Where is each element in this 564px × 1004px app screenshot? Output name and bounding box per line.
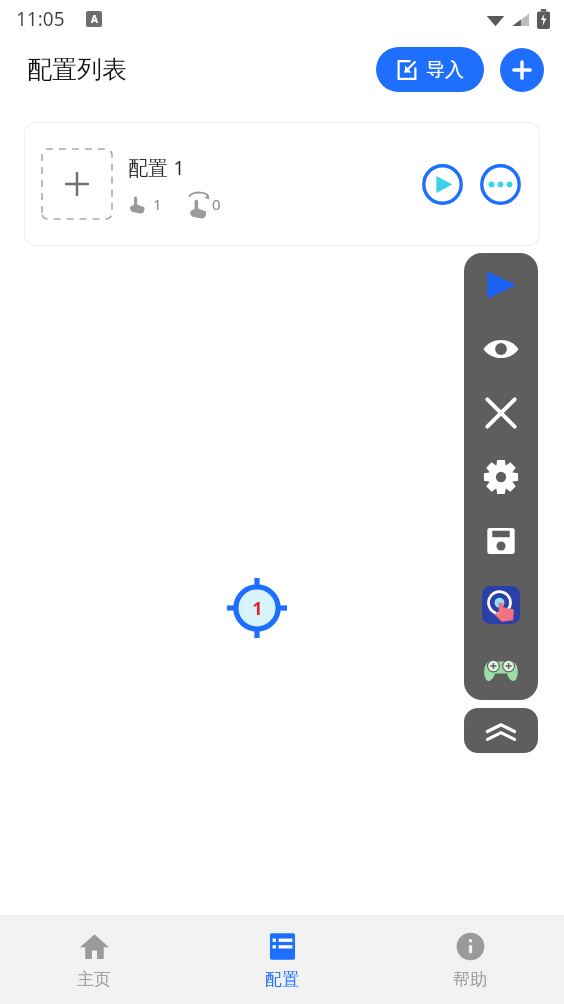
staticText: 配置列表 bbox=[27, 54, 127, 85]
staticText: 主页 bbox=[77, 969, 111, 990]
button[interactable]: Collapse toolbar bbox=[464, 708, 538, 753]
button[interactable]: 导入 bbox=[376, 47, 484, 92]
staticText: 11:05 bbox=[16, 6, 65, 32]
button[interactable]: Add configuration bbox=[500, 48, 544, 92]
staticText: 1 bbox=[252, 596, 263, 621]
button[interactable]: Touch record bbox=[464, 573, 538, 637]
staticText: 1 bbox=[153, 194, 162, 214]
staticText: 配置 bbox=[265, 969, 299, 990]
staticText: 帮助 bbox=[453, 969, 487, 990]
button[interactable]: Run configuration bbox=[420, 162, 464, 206]
button[interactable]: Close bbox=[464, 381, 538, 445]
button[interactable]: 主页 bbox=[0, 915, 188, 1004]
button[interactable]: Gamepad bbox=[464, 637, 538, 700]
button[interactable]: Run bbox=[464, 253, 538, 317]
button[interactable]: 配置 bbox=[188, 915, 376, 1004]
button[interactable]: More options bbox=[478, 162, 522, 206]
button[interactable] bbox=[42, 149, 112, 219]
button[interactable]: 帮助 bbox=[376, 915, 564, 1004]
button[interactable]: 配置 1 bbox=[24, 122, 540, 246]
button[interactable]: Preview bbox=[464, 317, 538, 381]
button[interactable]: Save bbox=[464, 509, 538, 573]
button[interactable]: Settings bbox=[464, 445, 538, 509]
staticText: A bbox=[91, 12, 98, 26]
staticText: 配置 1 bbox=[128, 154, 185, 181]
staticText: 导入 bbox=[426, 58, 464, 82]
staticText: 0 bbox=[212, 194, 221, 214]
